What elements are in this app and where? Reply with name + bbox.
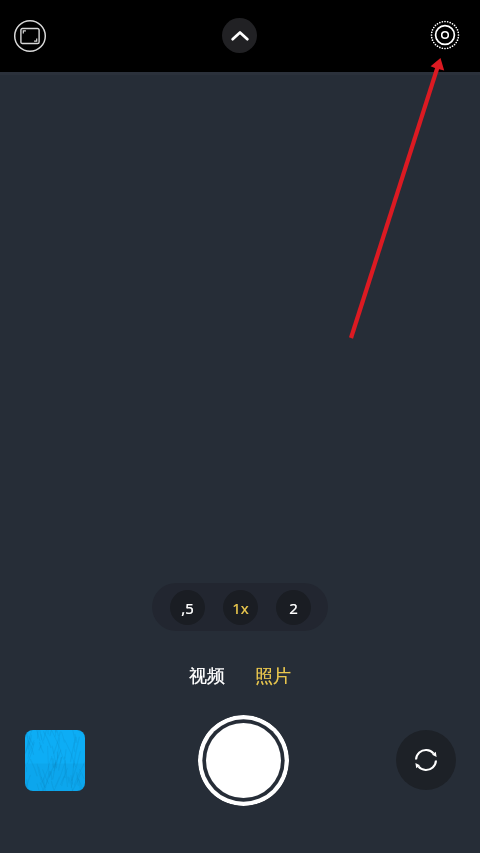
button[interactable]: Settings xyxy=(425,15,465,55)
button[interactable]: ,5 xyxy=(170,590,205,625)
staticText: 2 xyxy=(289,598,298,618)
staticText: 照片 xyxy=(255,665,291,688)
staticText: ,5 xyxy=(181,598,194,618)
button[interactable]: More options xyxy=(222,18,257,53)
button[interactable]: Aspect ratio xyxy=(8,14,51,57)
button[interactable]: Take photo xyxy=(198,715,289,806)
button[interactable]: 2 xyxy=(276,590,311,625)
button[interactable]: 视频 xyxy=(179,660,235,693)
button[interactable]: Switch camera xyxy=(396,730,456,790)
button[interactable]: Gallery xyxy=(25,730,85,791)
staticText: 视频 xyxy=(189,665,225,688)
button[interactable]: 1x xyxy=(223,590,258,625)
button[interactable]: 照片 xyxy=(245,660,301,693)
staticText: 1x xyxy=(232,598,249,618)
